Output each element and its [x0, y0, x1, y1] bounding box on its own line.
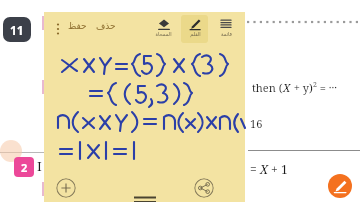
button[interactable]: More options — [52, 20, 64, 38]
staticText: X — [283, 80, 291, 95]
staticText: القلم — [190, 31, 201, 37]
staticText: حذف — [96, 21, 116, 31]
staticText: قائمة — [221, 31, 232, 37]
staticText: = — [250, 161, 260, 177]
staticText: X — [260, 161, 268, 177]
button[interactable]: Pen — [181, 15, 208, 43]
staticText: 11 — [10, 22, 24, 38]
button[interactable]: حفظ — [68, 21, 87, 31]
staticText: + y) — [291, 80, 313, 95]
staticText: + 1 — [268, 161, 288, 177]
staticText: = ··· — [317, 80, 338, 95]
staticText: 2 — [313, 80, 317, 90]
button[interactable]: Share — [194, 178, 214, 198]
staticText: الممحاة — [155, 31, 172, 37]
button[interactable]: 2 — [14, 157, 34, 177]
button[interactable]: حذف — [96, 21, 116, 31]
staticText: 16 — [250, 116, 263, 131]
staticText: 2 — [21, 160, 28, 175]
button[interactable]: Draw — [328, 174, 352, 198]
staticText: then ( — [252, 80, 283, 95]
staticText: حفظ — [68, 21, 87, 31]
staticText: I — [37, 157, 42, 175]
button[interactable]: 11 — [3, 17, 31, 42]
button[interactable]: List — [212, 15, 239, 43]
button[interactable]: Eraser — [150, 15, 177, 43]
button[interactable]: Add — [56, 178, 76, 198]
